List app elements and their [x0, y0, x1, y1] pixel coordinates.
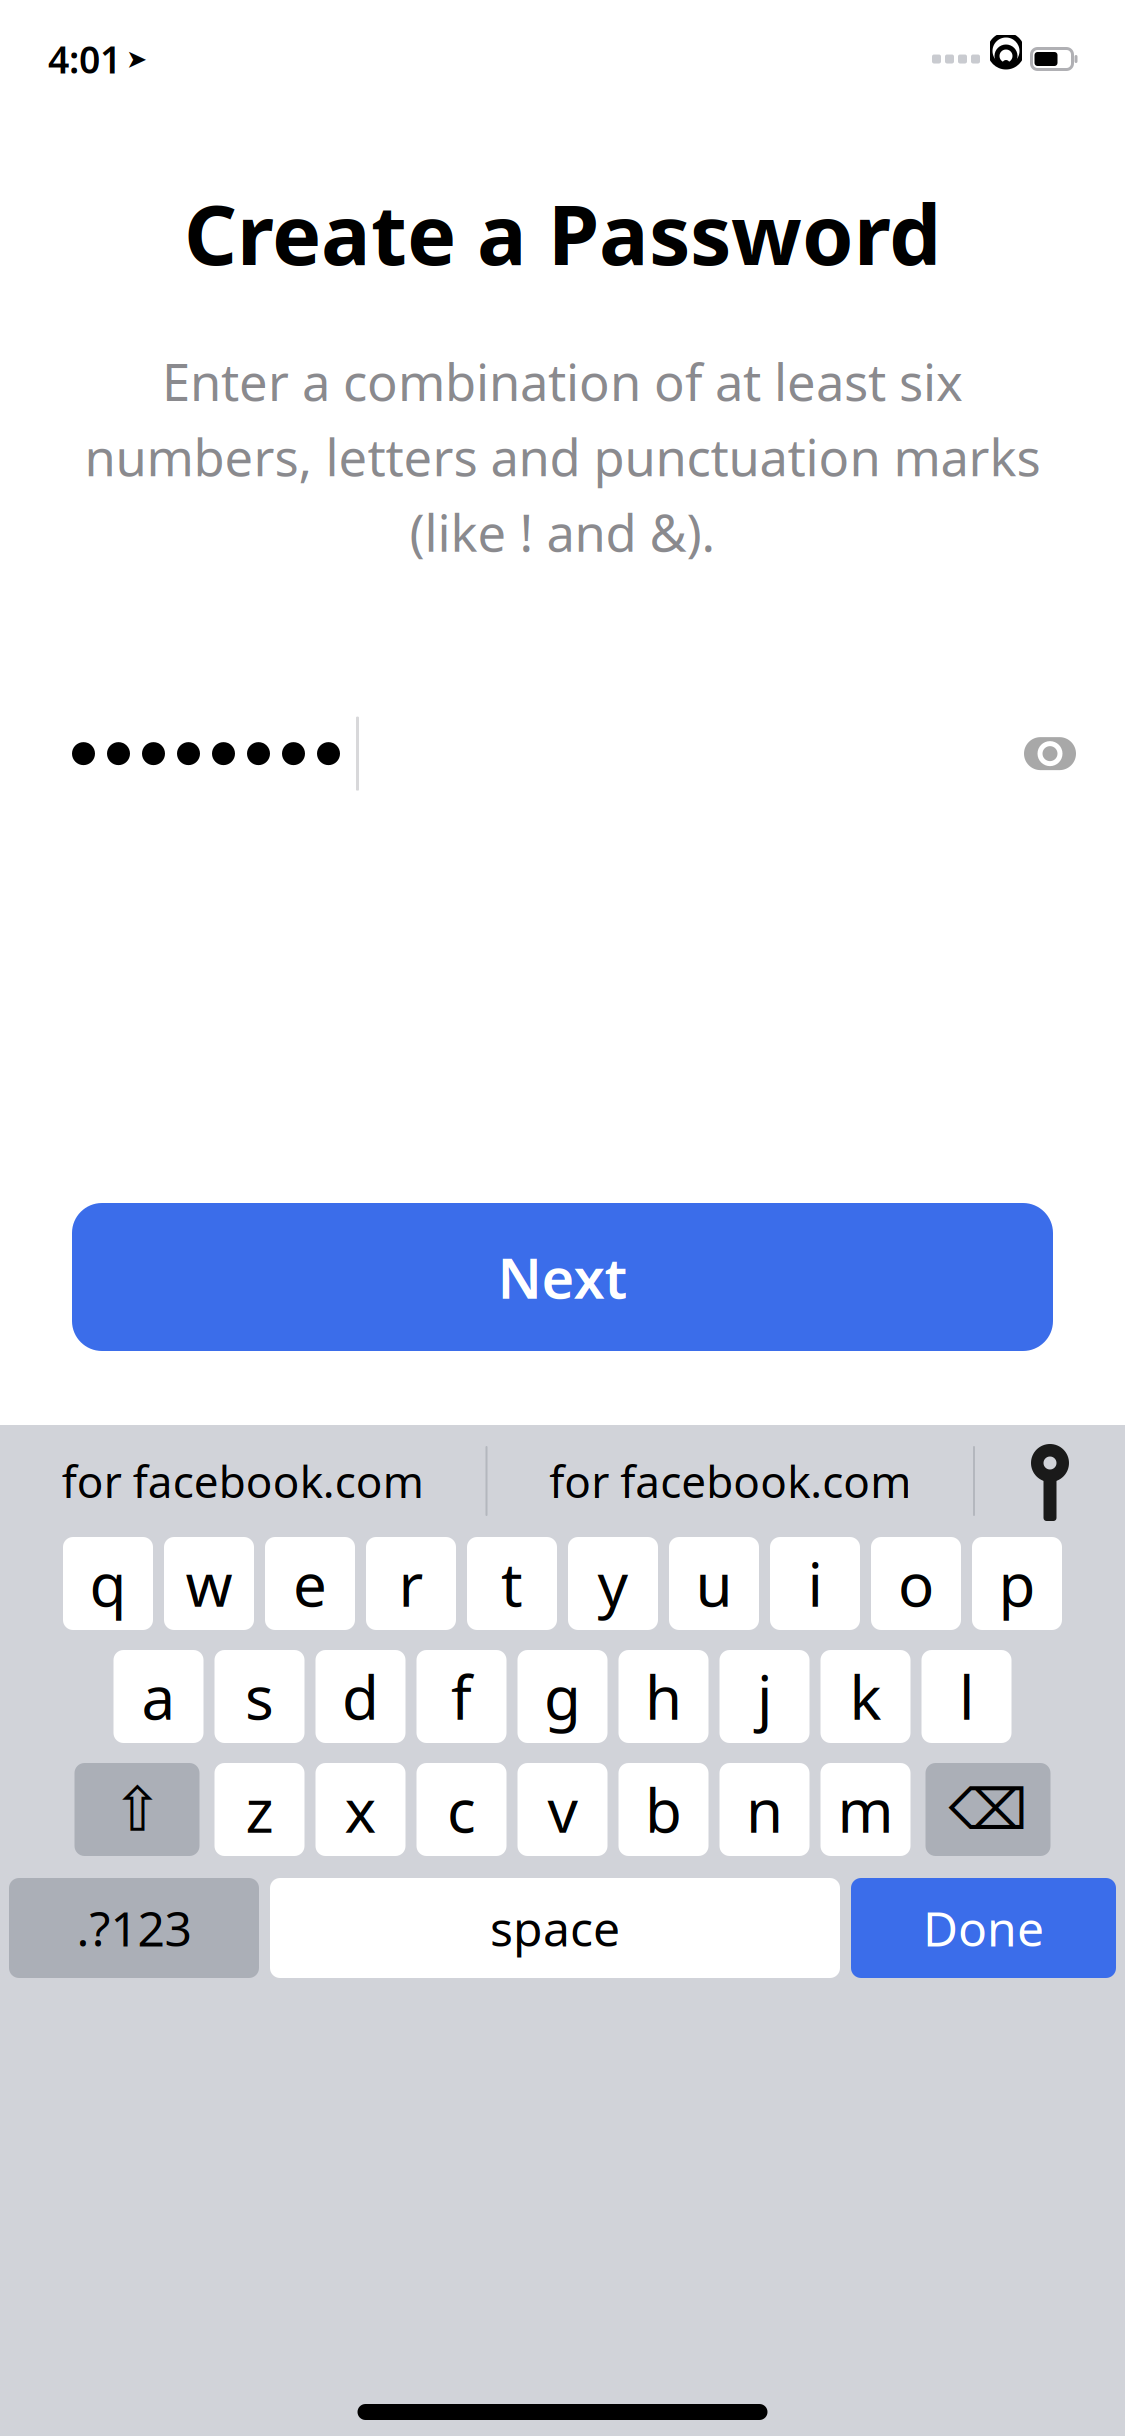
- staticText: (like ! and &).: [409, 498, 715, 566]
- button[interactable]: v: [517, 1763, 607, 1856]
- staticText: Done: [923, 1896, 1044, 1960]
- staticText: Create a Password: [184, 178, 941, 288]
- staticText: k: [849, 1657, 881, 1736]
- staticText: s: [245, 1657, 274, 1736]
- staticText: t: [501, 1544, 523, 1623]
- button[interactable]: p: [972, 1537, 1062, 1630]
- staticText: p: [998, 1544, 1035, 1623]
- staticText: numbers, letters and punctuation marks: [84, 423, 1040, 490]
- button[interactable]: y: [568, 1537, 658, 1630]
- button[interactable]: Next: [72, 1203, 1053, 1351]
- button[interactable]: h: [618, 1650, 708, 1743]
- button[interactable]: i: [770, 1537, 860, 1630]
- button[interactable]: a: [113, 1650, 203, 1743]
- button[interactable]: g: [517, 1650, 607, 1743]
- staticText: c: [447, 1770, 476, 1849]
- button[interactable]: .?123: [9, 1878, 259, 1978]
- staticText: for facebook.com: [549, 1452, 911, 1510]
- staticText: b: [645, 1770, 682, 1849]
- button[interactable]: b: [618, 1763, 708, 1856]
- staticText: a: [141, 1657, 175, 1736]
- staticText: space: [490, 1896, 620, 1960]
- staticText: i: [807, 1544, 822, 1623]
- staticText: d: [342, 1657, 379, 1736]
- button[interactable]: s: [214, 1650, 304, 1743]
- staticText: q: [89, 1544, 126, 1623]
- staticText: ⇧: [111, 1775, 162, 1844]
- button[interactable]: l: [921, 1650, 1011, 1743]
- button[interactable]: Passwords: [975, 1433, 1125, 1529]
- staticText: u: [695, 1544, 732, 1623]
- button[interactable]: x: [315, 1763, 405, 1856]
- staticText: .?123: [76, 1896, 191, 1960]
- staticText: j: [757, 1657, 772, 1736]
- button[interactable]: o: [871, 1537, 961, 1630]
- staticText: y: [597, 1544, 628, 1623]
- button[interactable]: for facebook.com: [0, 1433, 485, 1529]
- button[interactable]: space: [270, 1878, 840, 1978]
- button[interactable]: j: [719, 1650, 809, 1743]
- button[interactable]: u: [669, 1537, 759, 1630]
- button[interactable]: m: [820, 1763, 910, 1856]
- staticText: ➤: [126, 45, 147, 73]
- staticText: o: [898, 1544, 934, 1623]
- staticText: r: [398, 1544, 423, 1623]
- button[interactable]: d: [315, 1650, 405, 1743]
- staticText: z: [245, 1770, 273, 1849]
- button[interactable]: e: [265, 1537, 355, 1630]
- staticText: h: [645, 1657, 682, 1736]
- staticText: Next: [497, 1240, 627, 1314]
- staticText: w: [185, 1544, 232, 1623]
- button[interactable]: Done: [851, 1878, 1116, 1978]
- button[interactable]: Delete: [925, 1763, 1050, 1856]
- button[interactable]: Show password: [1005, 709, 1095, 799]
- staticText: for facebook.com: [62, 1452, 424, 1510]
- staticText: m: [837, 1770, 893, 1849]
- button[interactable]: n: [719, 1763, 809, 1856]
- staticText: v: [547, 1770, 577, 1849]
- staticText: 4:01: [48, 34, 121, 84]
- staticText: Enter a combination of at least six: [162, 348, 963, 415]
- button[interactable]: c: [416, 1763, 506, 1856]
- button[interactable]: k: [820, 1650, 910, 1743]
- staticText: ⌫: [948, 1778, 1027, 1841]
- button[interactable]: Shift: [74, 1763, 199, 1856]
- button[interactable]: f: [416, 1650, 506, 1743]
- button[interactable]: w: [164, 1537, 254, 1630]
- button[interactable]: q: [63, 1537, 153, 1630]
- staticText: n: [746, 1770, 783, 1849]
- staticText: x: [344, 1770, 376, 1849]
- button[interactable]: r: [366, 1537, 456, 1630]
- button[interactable]: t: [467, 1537, 557, 1630]
- staticText: g: [544, 1657, 581, 1736]
- button[interactable]: for facebook.com: [487, 1433, 973, 1529]
- staticText: e: [293, 1544, 327, 1623]
- staticText: l: [959, 1657, 974, 1736]
- button[interactable]: z: [214, 1763, 304, 1856]
- staticText: f: [451, 1657, 472, 1736]
